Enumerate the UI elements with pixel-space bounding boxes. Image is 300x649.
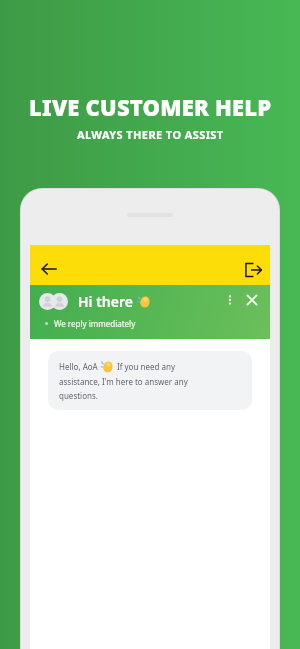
button[interactable]: More options: [221, 291, 239, 309]
staticText: We reply immediately: [54, 318, 136, 329]
staticText: questions.: [59, 390, 98, 401]
button[interactable]: Hello, AoA: [48, 351, 252, 410]
staticText: If you need any: [117, 361, 175, 372]
staticText: assistance, I'm here to answer any: [59, 376, 188, 387]
staticText: ALWAYS THERE TO ASSIST: [77, 127, 224, 142]
staticText: LIVE CUSTOMER HELP: [29, 92, 272, 122]
staticText: Hello, AoA: [59, 361, 98, 372]
button[interactable]: Close: [242, 290, 262, 310]
button[interactable]: Log out: [242, 259, 264, 281]
button[interactable]: Back: [37, 257, 61, 281]
staticText: Hi there: [78, 292, 133, 311]
